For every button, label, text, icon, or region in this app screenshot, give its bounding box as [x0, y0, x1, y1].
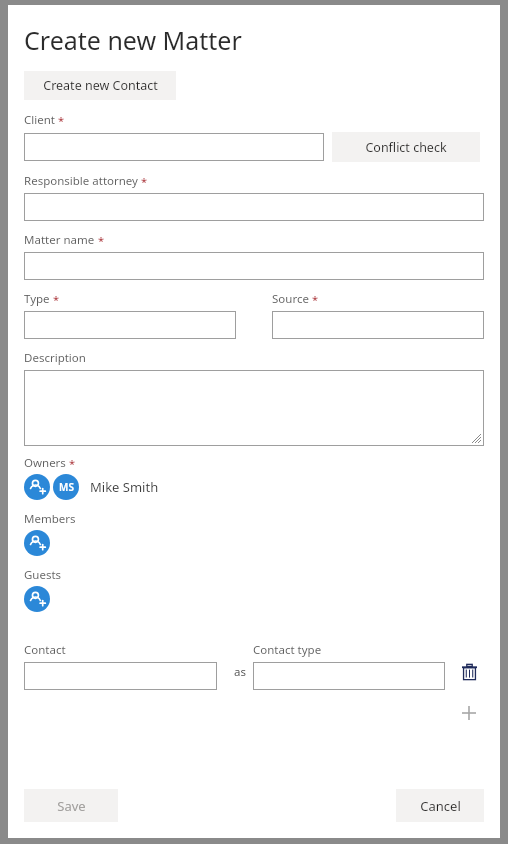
staticText: Responsible attorney	[24, 173, 138, 189]
button[interactable]: Add person	[24, 586, 50, 612]
staticText: MS	[59, 480, 74, 494]
button[interactable]: Save	[24, 789, 118, 822]
staticText: Source	[272, 291, 309, 307]
staticText: Guests	[24, 567, 62, 583]
staticText: Owners	[24, 455, 66, 471]
button[interactable]	[272, 311, 484, 339]
button[interactable]: Delete contact	[456, 658, 482, 686]
button[interactable]	[24, 311, 236, 339]
staticText: *	[312, 292, 319, 307]
staticText: Client	[24, 112, 55, 128]
staticText: Description	[24, 350, 86, 366]
staticText: Conflict check	[365, 139, 447, 156]
staticText: Mike Smith	[90, 478, 159, 496]
button[interactable]	[24, 193, 484, 221]
button[interactable]: Add person	[24, 474, 50, 500]
button[interactable]: Add contact	[454, 702, 484, 724]
button[interactable]: Conflict check	[332, 132, 480, 162]
staticText: *	[141, 174, 148, 189]
staticText: Contact	[24, 642, 66, 658]
staticText: Members	[24, 511, 76, 527]
button[interactable]: Add person	[24, 530, 50, 556]
staticText: Type	[24, 291, 50, 307]
staticText: Contact type	[253, 642, 322, 658]
staticText: *	[58, 113, 65, 128]
staticText: Create new Contact	[43, 77, 158, 94]
staticText: Cancel	[420, 797, 461, 815]
staticText: Save	[57, 797, 86, 815]
staticText: as	[234, 664, 246, 680]
button[interactable]	[24, 252, 484, 280]
button[interactable]	[24, 133, 324, 161]
staticText: Create new Matter	[24, 23, 242, 57]
staticText: *	[53, 292, 60, 307]
button[interactable]	[24, 370, 484, 446]
staticText: *	[69, 456, 76, 471]
staticText: *	[98, 233, 105, 248]
button[interactable]: Cancel	[396, 789, 484, 822]
staticText: Matter name	[24, 232, 95, 248]
button[interactable]	[253, 662, 445, 690]
button[interactable]: MS	[53, 474, 79, 500]
button[interactable]: Create new Contact	[24, 71, 176, 100]
button[interactable]	[24, 662, 217, 690]
